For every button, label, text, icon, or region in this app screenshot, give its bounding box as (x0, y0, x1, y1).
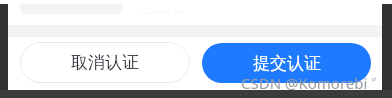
button[interactable]: 取消认证 (20, 42, 190, 83)
staticText: 取消认证 (71, 52, 139, 73)
staticText: CSDN @Komorebi (241, 73, 368, 93)
staticText: 提交认证 (253, 53, 321, 74)
button[interactable]: 提交认证 (202, 43, 371, 83)
